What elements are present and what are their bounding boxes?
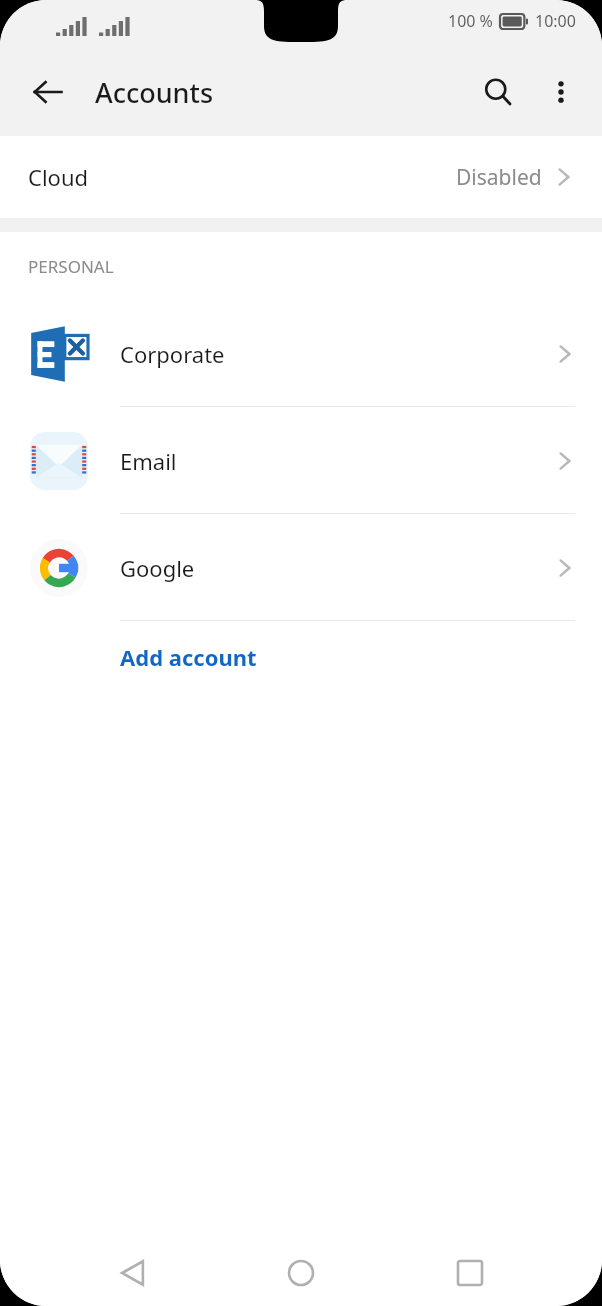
staticText: 10:00 [535,10,576,32]
button[interactable]: Corporate [0,300,602,407]
button[interactable]: Cloud [0,136,602,218]
button[interactable]: Back [97,1240,169,1306]
staticText: Corporate [120,339,225,369]
staticText: Cloud [28,162,89,192]
button[interactable]: More options [530,61,592,123]
staticText: Email [120,446,177,476]
staticText: Add account [120,642,257,672]
staticText: Accounts [95,74,214,111]
button[interactable]: Home [265,1240,337,1306]
staticText: Google [120,553,195,583]
button[interactable]: Add account [0,621,602,693]
button[interactable]: Google [0,514,602,621]
button[interactable]: Email [0,407,602,514]
staticText: PERSONAL [28,255,114,278]
button[interactable]: Search [466,60,530,124]
staticText: 100 % [448,10,493,32]
staticText: Disabled [456,163,542,192]
button[interactable]: Back [14,58,82,126]
button[interactable]: Recent apps [434,1240,506,1306]
